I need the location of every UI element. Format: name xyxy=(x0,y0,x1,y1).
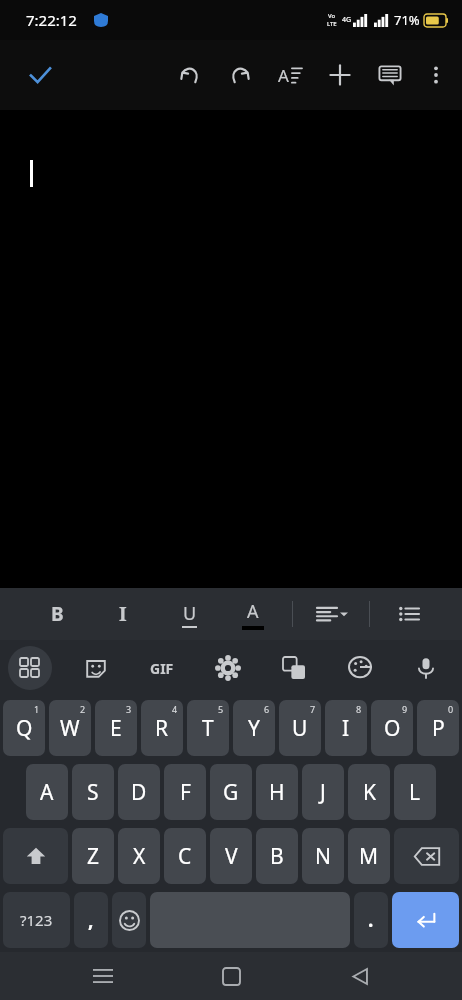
button[interactable]: R xyxy=(141,700,183,756)
staticText: T xyxy=(202,714,214,743)
staticText: B xyxy=(51,601,64,627)
button[interactable]: Redo xyxy=(218,53,262,97)
staticText: . xyxy=(368,907,374,933)
button[interactable]: M xyxy=(348,828,390,884)
staticText: I xyxy=(119,601,127,627)
staticText: S xyxy=(87,778,99,807)
button[interactable]: Alignment xyxy=(313,592,351,636)
staticText: J xyxy=(320,778,326,807)
button[interactable]: Translate xyxy=(272,646,316,690)
staticText: D xyxy=(131,778,147,807)
staticText: 3 xyxy=(126,703,132,715)
staticText: M xyxy=(359,842,379,871)
staticText: 8 xyxy=(356,703,362,715)
button[interactable]: E xyxy=(95,700,137,756)
button[interactable]: Done xyxy=(16,51,64,99)
staticText: ?123 xyxy=(20,910,53,930)
button[interactable]: Stickers xyxy=(74,646,118,690)
button[interactable]: Insert xyxy=(318,53,362,97)
staticText: 71% xyxy=(394,11,420,29)
button[interactable]: I xyxy=(325,700,367,756)
button[interactable]: More options xyxy=(414,53,458,97)
staticText: LTE xyxy=(327,20,337,28)
staticText: 2 xyxy=(80,703,86,715)
staticText: 6 xyxy=(264,703,270,715)
staticText: 7:22:12 xyxy=(26,10,77,30)
button[interactable]: Themes xyxy=(338,646,382,690)
staticText: F xyxy=(180,778,191,807)
staticText: 5 xyxy=(218,703,224,715)
button[interactable]: GIF xyxy=(140,646,184,690)
staticText: A xyxy=(278,64,289,87)
button[interactable]: X xyxy=(118,828,160,884)
button[interactable]: N xyxy=(302,828,344,884)
button[interactable]: C xyxy=(164,828,206,884)
button[interactable]: Emoji xyxy=(112,892,146,948)
staticText: W xyxy=(60,714,80,743)
staticText: Y xyxy=(248,714,260,743)
button[interactable]: B xyxy=(256,828,298,884)
button[interactable]: G xyxy=(210,764,252,820)
button[interactable]: F xyxy=(164,764,206,820)
button[interactable]: Comma xyxy=(74,892,108,948)
staticText: H xyxy=(269,778,285,807)
button[interactable]: Shift xyxy=(3,828,68,884)
button[interactable]: V xyxy=(210,828,252,884)
staticText: G xyxy=(223,778,239,807)
staticText: A xyxy=(40,778,54,807)
button[interactable]: Bulleted list xyxy=(390,592,428,636)
staticText: L xyxy=(409,778,421,807)
staticText: K xyxy=(363,778,376,807)
staticText: I xyxy=(342,714,350,743)
button[interactable]: L xyxy=(394,764,436,820)
button[interactable]: O xyxy=(371,700,413,756)
staticText: Vo xyxy=(328,12,336,20)
staticText: N xyxy=(315,842,331,871)
staticText: , xyxy=(88,907,94,933)
button[interactable]: Text formatting xyxy=(268,53,312,97)
button[interactable]: W xyxy=(49,700,91,756)
button[interactable]: Bold xyxy=(38,592,76,636)
staticText: B xyxy=(270,842,284,871)
staticText: A xyxy=(247,599,259,624)
button[interactable]: Z xyxy=(72,828,114,884)
button[interactable]: A xyxy=(26,764,68,820)
button[interactable]: Period xyxy=(354,892,388,948)
button[interactable]: Italic xyxy=(104,592,142,636)
button[interactable]: Settings xyxy=(206,646,250,690)
button[interactable]: Undo xyxy=(168,53,212,97)
staticText: Z xyxy=(87,842,100,871)
button[interactable]: Home xyxy=(205,952,257,1000)
button[interactable]: Underline xyxy=(170,592,208,636)
button[interactable] xyxy=(0,110,462,588)
button[interactable]: P xyxy=(417,700,459,756)
button[interactable]: Voice input xyxy=(404,646,448,690)
staticText: 0 xyxy=(448,703,454,715)
button[interactable]: H xyxy=(256,764,298,820)
button[interactable]: K xyxy=(348,764,390,820)
button[interactable]: Enter xyxy=(392,892,459,948)
staticText: 9 xyxy=(402,703,408,715)
staticText: C xyxy=(178,842,192,871)
button[interactable]: Backspace xyxy=(394,828,459,884)
button[interactable]: S xyxy=(72,764,114,820)
button[interactable]: Text color xyxy=(234,592,272,636)
staticText: 4 xyxy=(172,703,178,715)
staticText: V xyxy=(225,842,238,871)
button[interactable]: Recents xyxy=(77,952,129,1000)
button[interactable]: D xyxy=(118,764,160,820)
staticText: 4G xyxy=(342,15,352,25)
button[interactable]: Symbols xyxy=(3,892,70,948)
button[interactable]: Back xyxy=(334,952,386,1000)
button[interactable]: Comments xyxy=(368,53,412,97)
staticText: R xyxy=(155,714,169,743)
button[interactable]: T xyxy=(187,700,229,756)
button[interactable]: J xyxy=(302,764,344,820)
button[interactable]: Y xyxy=(233,700,275,756)
button[interactable]: Q xyxy=(3,700,45,756)
button[interactable]: U xyxy=(279,700,321,756)
staticText: GIF xyxy=(150,659,174,678)
button[interactable]: Toolbox xyxy=(8,646,52,690)
staticText: 7 xyxy=(310,703,316,715)
